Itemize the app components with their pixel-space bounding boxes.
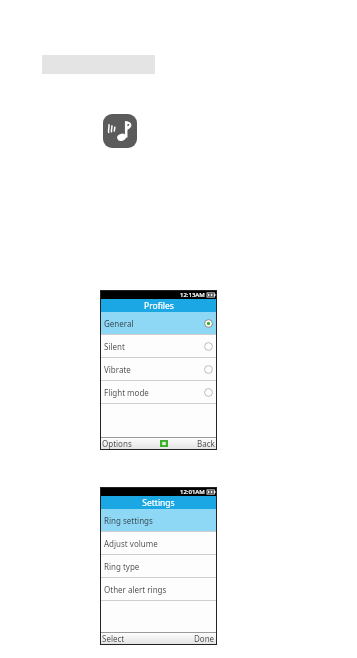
staticText: Select: [102, 633, 125, 644]
staticText: Profiles: [144, 300, 174, 312]
staticText: General: [104, 318, 204, 329]
staticText: Other alert rings: [104, 584, 213, 595]
button[interactable]: Options: [102, 438, 132, 449]
staticText: Adjust volume: [104, 538, 213, 549]
button[interactable]: Ring type: [100, 555, 217, 578]
staticText: Ring type: [104, 561, 213, 572]
button[interactable]: Select: [102, 633, 125, 644]
button[interactable]: Adjust volume: [100, 532, 217, 555]
button[interactable]: Select: [160, 440, 168, 447]
staticText: 12:01AM: [180, 488, 205, 496]
staticText: Settings: [142, 497, 175, 509]
staticText: Done: [194, 633, 215, 644]
button[interactable]: Ring settings: [100, 509, 217, 532]
button[interactable]: Silent: [100, 335, 217, 358]
button[interactable]: Profiles app icon: [103, 114, 137, 148]
button[interactable]: Other alert rings: [100, 578, 217, 601]
staticText: Options: [102, 438, 132, 449]
button[interactable]: Done: [194, 633, 215, 644]
staticText: 12:13AM: [180, 291, 205, 299]
button[interactable]: General: [100, 312, 217, 335]
staticText: Flight mode: [104, 387, 204, 398]
staticText: Back: [197, 438, 215, 449]
button[interactable]: Flight mode: [100, 381, 217, 404]
staticText: Vibrate: [104, 364, 204, 375]
staticText: Silent: [104, 341, 204, 352]
button[interactable]: Back: [197, 438, 215, 449]
staticText: Ring settings: [104, 515, 213, 526]
button[interactable]: Vibrate: [100, 358, 217, 381]
